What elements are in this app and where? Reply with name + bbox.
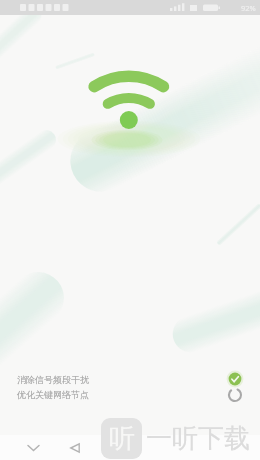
- staticText: 优化关键网络节点: [17, 389, 89, 400]
- staticText: 一听下载: [146, 422, 250, 455]
- staticText: 听: [109, 422, 135, 455]
- button[interactable]: Back: [63, 440, 87, 456]
- staticText: 消除信号频段干扰: [17, 374, 89, 385]
- button[interactable]: Loading: [228, 388, 242, 402]
- button[interactable]: Hide keyboard: [21, 441, 45, 455]
- staticText: 92%: [241, 3, 256, 13]
- button[interactable]: Completed: [228, 372, 242, 386]
